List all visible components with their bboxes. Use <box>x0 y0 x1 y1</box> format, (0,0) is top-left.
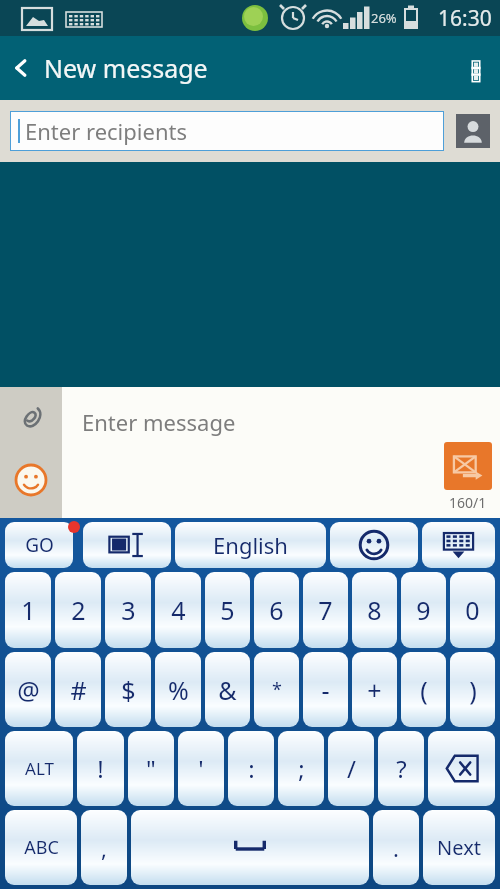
staticText: + <box>367 673 382 707</box>
staticText: - <box>321 673 330 707</box>
button[interactable]: Hide keyboard <box>422 522 495 568</box>
staticText: 3 <box>121 593 136 627</box>
button[interactable]: * <box>254 652 299 727</box>
button[interactable]: @ <box>5 652 51 727</box>
button[interactable]: English <box>175 522 326 568</box>
button[interactable]: GO <box>5 522 73 568</box>
button[interactable]: 1 <box>5 572 51 648</box>
staticText: English <box>213 530 288 560</box>
button[interactable]: # <box>55 652 101 727</box>
button[interactable]: Split keyboard <box>83 522 171 568</box>
staticText: 16:30 <box>438 4 492 33</box>
button[interactable]: 2 <box>55 572 101 648</box>
button[interactable]: Enter message <box>82 407 236 437</box>
staticText: ; <box>298 752 305 785</box>
staticText: " <box>146 752 156 785</box>
staticText: ) <box>469 673 477 707</box>
staticText: 9 <box>416 593 431 627</box>
button[interactable]: : <box>228 731 274 806</box>
staticText: / <box>347 752 356 785</box>
button[interactable]: 9 <box>401 572 446 648</box>
button[interactable]: 5 <box>205 572 250 648</box>
button[interactable]: , <box>81 810 127 885</box>
button[interactable]: ABC <box>5 810 77 885</box>
button[interactable]: ) <box>450 652 495 727</box>
staticText: : <box>248 752 255 785</box>
staticText: % <box>168 673 189 707</box>
staticText: 1 <box>21 593 36 627</box>
button[interactable]: 3 <box>105 572 151 648</box>
staticText: # <box>70 673 87 707</box>
staticText: New message <box>44 51 208 85</box>
staticText: 26% <box>371 9 397 27</box>
staticText: $ <box>121 673 136 707</box>
staticText: Next <box>437 834 481 861</box>
staticText: . <box>393 833 399 863</box>
staticText: * <box>272 677 282 702</box>
button[interactable]: ; <box>278 731 324 806</box>
staticText: ABC <box>24 835 59 860</box>
staticText: 160/1 <box>449 493 487 512</box>
button[interactable]: Send message <box>444 442 492 490</box>
staticText: , <box>101 833 107 863</box>
staticText: Enter recipients <box>25 116 187 146</box>
button[interactable]: . <box>373 810 419 885</box>
button[interactable]: ! <box>77 731 124 806</box>
button[interactable]: - <box>303 652 348 727</box>
staticText: 6 <box>269 593 284 627</box>
button[interactable]: Choose contacts <box>456 114 490 148</box>
button[interactable]: Attach <box>0 387 62 449</box>
button[interactable]: Space <box>131 810 369 885</box>
button[interactable]: " <box>128 731 174 806</box>
staticText: ? <box>396 752 407 785</box>
button[interactable]: ( <box>401 652 446 727</box>
button[interactable]: % <box>155 652 201 727</box>
staticText: 5 <box>220 593 235 627</box>
button[interactable]: ? <box>378 731 424 806</box>
button[interactable]: More options <box>452 36 500 100</box>
button[interactable]: 6 <box>254 572 299 648</box>
button[interactable]: Next <box>423 810 495 885</box>
button[interactable]: + <box>352 652 397 727</box>
button[interactable]: Insert emoticon <box>0 449 62 511</box>
staticText: GO <box>25 532 54 558</box>
staticText: ' <box>198 752 204 785</box>
staticText: ALT <box>25 757 54 780</box>
button[interactable]: 0 <box>450 572 495 648</box>
button[interactable]: / <box>328 731 374 806</box>
button[interactable]: $ <box>105 652 151 727</box>
button[interactable]: 7 <box>303 572 348 648</box>
staticText: & <box>218 673 237 707</box>
other: Back <box>10 56 34 80</box>
staticText: ( <box>420 673 428 707</box>
button[interactable]: ' <box>178 731 224 806</box>
button[interactable]: 4 <box>155 572 201 648</box>
staticText: 2 <box>71 593 86 627</box>
staticText: 4 <box>171 593 186 627</box>
staticText: ! <box>97 752 104 785</box>
button[interactable]: Enter recipients <box>10 111 444 151</box>
staticText: @ <box>17 673 40 707</box>
button[interactable]: Delete <box>428 731 495 806</box>
button[interactable]: Emoji <box>330 522 418 568</box>
staticText: 0 <box>465 593 480 627</box>
button[interactable]: & <box>205 652 250 727</box>
staticText: 7 <box>318 593 333 627</box>
button[interactable]: 8 <box>352 572 397 648</box>
staticText: 8 <box>367 593 382 627</box>
button[interactable]: Back <box>0 43 220 93</box>
button[interactable]: ALT <box>5 731 73 806</box>
